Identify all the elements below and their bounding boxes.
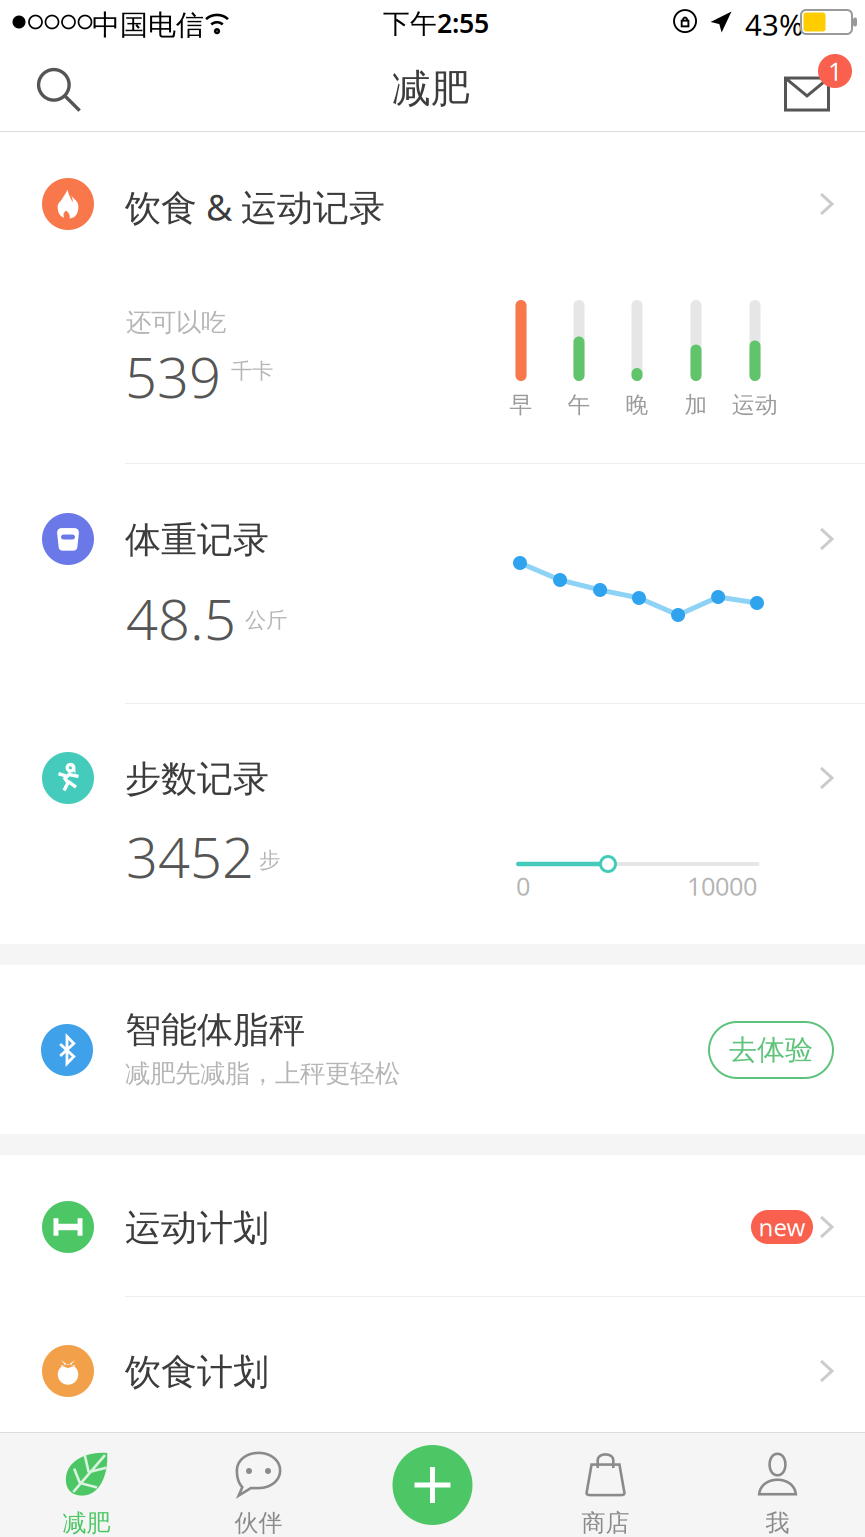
staticText: 10000 — [687, 869, 757, 903]
staticText: 减肥先减脂，上秤更轻松 — [125, 1058, 400, 1089]
staticText: 3452 — [126, 819, 254, 893]
staticText: 还可以吃 — [126, 307, 226, 338]
staticText: 运动计划 — [125, 1206, 269, 1250]
staticText: new — [758, 1211, 805, 1243]
button[interactable] — [0, 1297, 865, 1432]
button[interactable]: Search — [0, 48, 118, 131]
button[interactable]: 减肥 — [26, 1433, 146, 1537]
staticText: 去体验 — [729, 1033, 813, 1067]
button[interactable] — [0, 965, 865, 1134]
staticText: 午 — [567, 391, 590, 419]
staticText: 中国电信 — [92, 8, 204, 42]
staticText: 减肥 — [392, 65, 470, 112]
staticText: 加 — [684, 391, 707, 419]
staticText: 智能体脂秤 — [125, 1008, 305, 1052]
button[interactable]: Messages — [746, 48, 865, 131]
button[interactable]: 去体验 — [709, 1022, 833, 1078]
staticText: 1 — [828, 54, 842, 88]
button[interactable]: 伙伴 — [198, 1433, 318, 1537]
staticText: 步 — [259, 847, 280, 873]
staticText: 饮食 & 运动记录 — [125, 183, 385, 231]
staticText: 千卡 — [231, 358, 273, 384]
staticText: 我 — [765, 1508, 789, 1537]
staticText: 减肥 — [62, 1508, 110, 1537]
staticText: 体重记录 — [125, 518, 269, 562]
button[interactable]: 我 — [717, 1433, 837, 1537]
staticText: 539 — [125, 339, 221, 413]
staticText: 公斤 — [245, 607, 287, 633]
staticText: 步数记录 — [125, 757, 269, 801]
staticText: 48.5 — [126, 581, 236, 655]
staticText: 运动 — [732, 391, 778, 419]
staticText: 伙伴 — [234, 1508, 282, 1537]
staticText: 43% — [745, 5, 803, 44]
staticText: 下午2:55 — [383, 5, 489, 40]
button[interactable] — [0, 1155, 865, 1297]
staticText: 饮食计划 — [125, 1350, 269, 1394]
staticText: 商店 — [581, 1508, 629, 1537]
button[interactable]: 商店 — [545, 1433, 665, 1537]
staticText: 0 — [516, 869, 530, 903]
button[interactable]: Add — [384, 1437, 480, 1533]
staticText: 晚 — [625, 391, 648, 419]
staticText: 早 — [509, 391, 532, 419]
